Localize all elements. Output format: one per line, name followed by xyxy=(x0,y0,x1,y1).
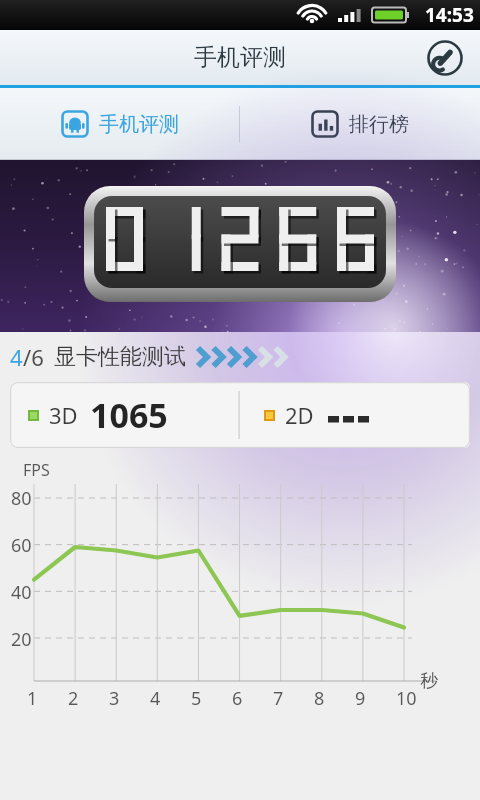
staticText: 5 xyxy=(191,686,202,711)
staticText: /6 xyxy=(23,342,44,372)
staticText: 1 xyxy=(27,686,38,711)
staticText: 80 xyxy=(11,486,32,511)
staticText: 手机评测 xyxy=(194,43,286,72)
staticText: 2 xyxy=(68,686,79,711)
button[interactable]: 手机评测 xyxy=(0,88,239,160)
staticText: 手机评测 xyxy=(99,112,179,137)
staticText: 显卡性能测试 xyxy=(54,343,186,371)
staticText: 排行榜 xyxy=(349,112,409,137)
staticText: 9 xyxy=(355,686,366,711)
staticText: 3 xyxy=(109,686,120,711)
staticText: 4 xyxy=(150,686,161,711)
staticText: 7 xyxy=(273,686,284,711)
staticText: 秒 xyxy=(420,670,438,693)
staticText: 1065 xyxy=(90,392,168,438)
staticText: 6 xyxy=(232,686,243,711)
staticText: 2D xyxy=(285,400,314,430)
staticText: 10 xyxy=(396,686,417,711)
staticText: FPS xyxy=(23,459,50,481)
button[interactable]: 3D xyxy=(10,382,470,448)
staticText: 3D xyxy=(49,400,78,430)
button[interactable]: 排行榜 xyxy=(240,88,480,160)
staticText: 20 xyxy=(11,627,32,652)
staticText: 40 xyxy=(11,580,32,605)
staticText: 14:53 xyxy=(425,2,474,28)
button[interactable]: Settings xyxy=(422,35,468,81)
staticText: 60 xyxy=(11,533,32,558)
staticText: 4 xyxy=(10,342,23,372)
staticText: 8 xyxy=(314,686,325,711)
